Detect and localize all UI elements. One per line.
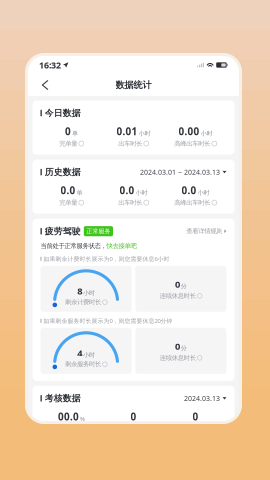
staticText: 快去接单吧	[106, 242, 136, 250]
staticText: 分	[181, 344, 187, 352]
staticText: 单	[76, 189, 82, 196]
button[interactable]: Back	[35, 76, 55, 94]
staticText: 数据统计	[115, 79, 151, 91]
staticText: 出车时长	[118, 139, 142, 148]
staticText: 完单量	[59, 199, 77, 207]
staticText: 单	[72, 130, 78, 137]
staticText: 连续休息时长	[160, 354, 196, 362]
staticText: 0.0	[181, 184, 196, 197]
staticText: 完单量	[59, 139, 77, 148]
staticText: 剩余服务时长	[65, 360, 101, 368]
staticText: 小时	[83, 351, 95, 359]
staticText: 查看详情规则	[186, 227, 222, 235]
staticText: 0	[130, 410, 136, 423]
staticText: 00.0	[58, 410, 79, 423]
staticText: 0	[65, 125, 71, 138]
staticText: 小时	[200, 130, 212, 137]
staticText: 如果剩余服务时长展示为0，则您需要休息20分钟	[43, 317, 172, 325]
staticText: 0.0	[60, 184, 75, 197]
staticText: 连续休息时长	[160, 292, 196, 300]
staticText: 今日数据	[45, 107, 81, 119]
staticText: 剩余计费时长	[65, 298, 101, 306]
staticText: 高峰出车时长	[174, 199, 210, 207]
staticText: %	[80, 414, 85, 423]
staticText: 分	[181, 282, 187, 290]
staticText: 小时	[83, 289, 95, 297]
staticText: 8	[77, 284, 82, 297]
staticText: 2024.03.13	[184, 394, 220, 403]
staticText: 小时	[135, 189, 147, 196]
staticText: 16:32	[39, 59, 61, 71]
button[interactable]: 查看详情规则	[186, 227, 226, 235]
staticText: 小时	[197, 189, 209, 196]
staticText: 考核数据	[45, 393, 81, 404]
staticText: 正常服务	[86, 227, 110, 235]
staticText: 历史数据	[45, 167, 81, 178]
staticText: 如果剩余计费时长展示为0，则您需要休息6小时	[43, 255, 169, 263]
staticText: 高峰出车时长	[174, 139, 210, 148]
staticText: 0	[192, 410, 198, 423]
staticText: 当前处于正常服务状态，	[40, 242, 106, 250]
staticText: 0.00	[178, 125, 199, 138]
staticText: 0.0	[119, 184, 134, 197]
staticText: 0	[175, 278, 180, 290]
staticText: 小时	[138, 130, 150, 137]
button[interactable]: 2024.03.01 ~ 2024.03.13	[140, 167, 226, 177]
button[interactable]: 2024.03.13	[184, 394, 226, 403]
staticText: 2024.03.01 ~ 2024.03.13	[140, 167, 220, 177]
staticText: 出车时长	[118, 199, 142, 207]
staticText: 疲劳驾驶	[45, 226, 81, 237]
staticText: 0.01	[116, 125, 137, 138]
staticText: 4	[77, 346, 82, 359]
staticText: 0	[175, 340, 180, 352]
